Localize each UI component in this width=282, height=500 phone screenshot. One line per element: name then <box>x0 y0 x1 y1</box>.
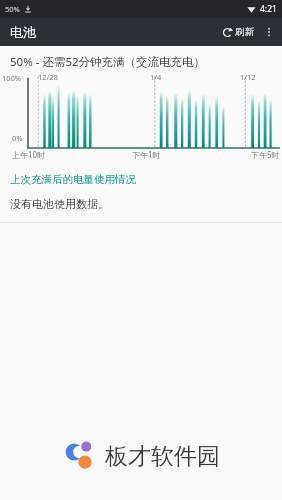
staticText: 1/12 <box>240 72 256 82</box>
staticText: 0% <box>12 133 23 143</box>
staticText: 没有电池使用数据。 <box>10 197 109 211</box>
staticText: 电池 <box>10 24 36 40</box>
staticText: 4:21 <box>260 3 277 15</box>
staticText: 下午5时 <box>251 149 280 160</box>
staticText: 板才软件园 <box>105 442 220 471</box>
button[interactable]: 刷新 <box>218 22 258 42</box>
staticText: 1/4 <box>150 72 162 82</box>
staticText: 刷新 <box>235 26 254 38</box>
staticText: 100% <box>2 73 22 83</box>
staticText: 下午1时 <box>132 149 161 160</box>
button[interactable]: 更多选项 <box>258 21 280 43</box>
staticText: 50% <box>5 4 20 14</box>
staticText: 上午10时 <box>12 149 46 160</box>
staticText: 50% - 还需52分钟充满（交流电充电） <box>10 54 206 70</box>
button[interactable]: 上次充满后的电量使用情况 <box>0 170 282 189</box>
staticText: 上次充满后的电量使用情况 <box>10 173 136 186</box>
staticText: 12/28 <box>38 72 58 82</box>
